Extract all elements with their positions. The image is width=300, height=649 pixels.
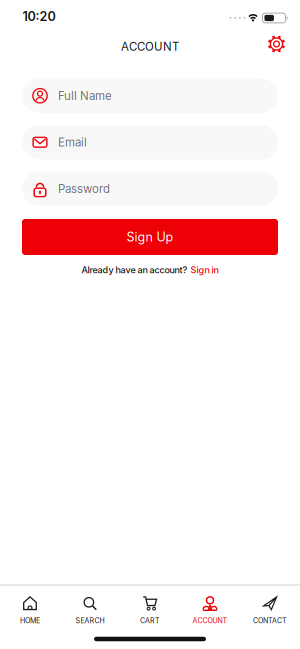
staticText: ACCOUNT	[192, 616, 227, 625]
button[interactable]: Sign Up	[22, 219, 278, 255]
staticText: Sign Up	[126, 229, 173, 245]
staticText: Sign in	[190, 264, 218, 275]
staticText: CART	[140, 616, 160, 625]
button[interactable]: ACCOUNT	[180, 593, 240, 627]
button[interactable]: Sign in	[190, 264, 218, 275]
staticText: Full Name	[58, 89, 112, 103]
staticText: SEARCH	[75, 616, 104, 625]
button[interactable]: Password	[22, 171, 278, 206]
staticText: CONTACT	[253, 616, 287, 625]
button[interactable]: SEARCH	[60, 593, 120, 627]
staticText: ACCOUNT	[121, 40, 179, 53]
button[interactable]: Email	[22, 125, 278, 159]
button[interactable]: CONTACT	[240, 593, 300, 627]
button[interactable]: CART	[120, 593, 180, 627]
button[interactable]	[267, 35, 285, 53]
button[interactable]: HOME	[0, 593, 60, 627]
button[interactable]: Full Name	[22, 78, 278, 113]
staticText: Email	[58, 135, 87, 149]
staticText: Password	[58, 182, 110, 196]
staticText: 10:20	[22, 9, 55, 24]
staticText: Already have an account?	[81, 264, 187, 275]
staticText: HOME	[20, 616, 40, 625]
